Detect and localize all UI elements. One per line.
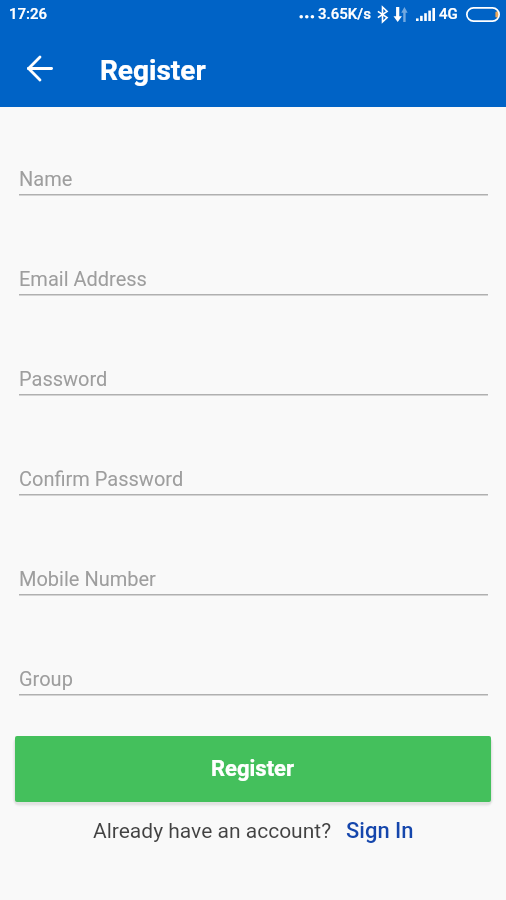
button[interactable]: Mobile Number — [19, 556, 488, 598]
button[interactable]: Back — [8, 36, 72, 100]
staticText: Password — [19, 367, 108, 390]
staticText: Group — [19, 667, 73, 690]
button[interactable]: Confirm Password — [19, 456, 488, 498]
staticText: Email Address — [19, 267, 147, 290]
staticText: Register — [211, 756, 295, 782]
button[interactable]: Group — [19, 656, 488, 698]
staticText: Confirm Password — [19, 467, 184, 490]
button[interactable]: Password — [19, 356, 488, 398]
staticText: Sign In — [346, 818, 414, 844]
staticText: Register — [100, 54, 206, 87]
staticText: 3.65K/s — [318, 5, 371, 23]
button[interactable]: Register — [15, 736, 491, 802]
button[interactable]: Email Address — [19, 256, 488, 298]
staticText: 17:26 — [9, 5, 48, 23]
staticText: 4G — [439, 5, 458, 23]
button[interactable]: Sign In — [346, 818, 414, 844]
staticText: Already have an account? — [93, 819, 332, 844]
button[interactable]: Name — [19, 156, 488, 198]
staticText: Name — [19, 167, 73, 190]
staticText: Mobile Number — [19, 567, 156, 590]
